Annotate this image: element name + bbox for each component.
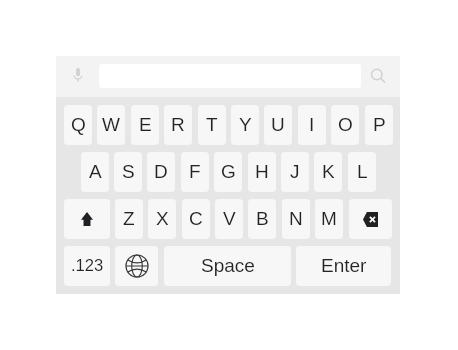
staticText: I: [309, 114, 315, 135]
staticText: U: [271, 114, 285, 135]
button[interactable]: Q: [64, 105, 92, 145]
staticText: S: [122, 161, 135, 182]
button[interactable]: U: [264, 105, 292, 145]
staticText: J: [290, 161, 300, 182]
button[interactable]: N: [282, 199, 310, 239]
button[interactable]: V: [215, 199, 243, 239]
button[interactable]: C: [182, 199, 210, 239]
button[interactable]: E: [131, 105, 159, 145]
button[interactable]: T: [198, 105, 226, 145]
button[interactable]: Backspace: [349, 199, 392, 239]
staticText: Y: [239, 114, 252, 135]
button[interactable]: F: [181, 152, 209, 192]
staticText: X: [156, 208, 169, 229]
button[interactable]: G: [214, 152, 242, 192]
staticText: A: [89, 161, 102, 182]
staticText: Space: [201, 255, 255, 276]
staticText: L: [357, 161, 368, 182]
button[interactable]: Y: [231, 105, 259, 145]
button[interactable]: M: [315, 199, 343, 239]
staticText: Z: [123, 208, 135, 229]
button[interactable]: X: [148, 199, 176, 239]
staticText: W: [102, 114, 120, 135]
button[interactable]: O: [331, 105, 359, 145]
button[interactable]: Z: [115, 199, 143, 239]
staticText: .123: [71, 256, 104, 275]
staticText: M: [321, 208, 337, 229]
staticText: P: [373, 114, 386, 135]
staticText: T: [206, 114, 218, 135]
button[interactable]: Search: [370, 68, 387, 85]
button[interactable]: Change keyboard language: [115, 246, 158, 286]
staticText: F: [189, 161, 201, 182]
button[interactable]: J: [281, 152, 309, 192]
staticText: B: [256, 208, 269, 229]
button[interactable]: Shift: [64, 199, 110, 239]
button[interactable]: Space: [164, 246, 291, 286]
staticText: K: [322, 161, 335, 182]
staticText: C: [189, 208, 203, 229]
button[interactable]: R: [164, 105, 192, 145]
staticText: E: [139, 114, 152, 135]
button[interactable]: B: [248, 199, 276, 239]
staticText: N: [289, 208, 303, 229]
button[interactable]: L: [348, 152, 376, 192]
button[interactable]: Voice search: [72, 67, 84, 83]
button[interactable]: D: [147, 152, 175, 192]
staticText: O: [338, 114, 353, 135]
staticText: Q: [71, 114, 86, 135]
button[interactable]: Enter: [296, 246, 391, 286]
button[interactable]: P: [365, 105, 393, 145]
button[interactable]: I: [298, 105, 326, 145]
button[interactable]: S: [114, 152, 142, 192]
button[interactable]: .123: [64, 246, 110, 286]
staticText: D: [154, 161, 168, 182]
button[interactable]: A: [81, 152, 109, 192]
staticText: H: [255, 161, 269, 182]
staticText: V: [223, 208, 236, 229]
button[interactable]: H: [248, 152, 276, 192]
staticText: Enter: [321, 255, 367, 276]
button[interactable]: K: [314, 152, 342, 192]
staticText: G: [221, 161, 236, 182]
staticText: R: [171, 114, 185, 135]
button[interactable]: W: [97, 105, 125, 145]
